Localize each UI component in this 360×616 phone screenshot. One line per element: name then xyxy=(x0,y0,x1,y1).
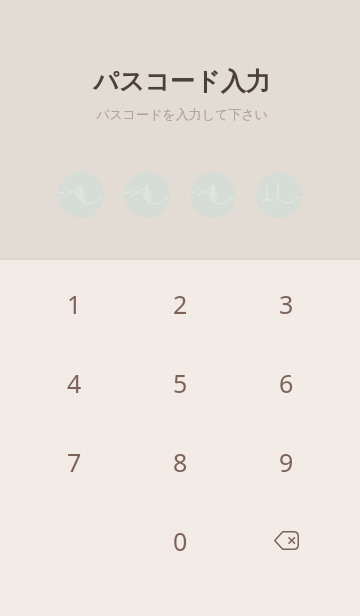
other: Backspace xyxy=(274,531,299,550)
staticText: 7 xyxy=(67,445,82,479)
button[interactable]: 8 xyxy=(127,422,233,501)
staticText: パスコードを入力して下さい xyxy=(96,106,268,122)
staticText: 4 xyxy=(67,366,82,400)
staticText: 2 xyxy=(173,287,188,321)
staticText: 1 xyxy=(67,287,82,321)
button[interactable]: 7 xyxy=(21,422,127,501)
staticText: 6 xyxy=(279,366,294,400)
button[interactable]: 5 xyxy=(127,343,233,422)
staticText: 3 xyxy=(279,287,294,321)
button[interactable]: 4 xyxy=(21,343,127,422)
button[interactable]: 6 xyxy=(233,343,339,422)
staticText: 8 xyxy=(173,445,188,479)
button[interactable]: 3 xyxy=(233,264,339,343)
button[interactable]: Delete xyxy=(233,501,339,580)
staticText: パスコード入力 xyxy=(93,66,271,97)
button[interactable]: 0 xyxy=(127,501,233,580)
staticText: 5 xyxy=(173,366,188,400)
button[interactable]: 1 xyxy=(21,264,127,343)
staticText: 0 xyxy=(173,524,188,558)
button[interactable]: 2 xyxy=(127,264,233,343)
staticText: 9 xyxy=(279,445,294,479)
button[interactable]: 9 xyxy=(233,422,339,501)
